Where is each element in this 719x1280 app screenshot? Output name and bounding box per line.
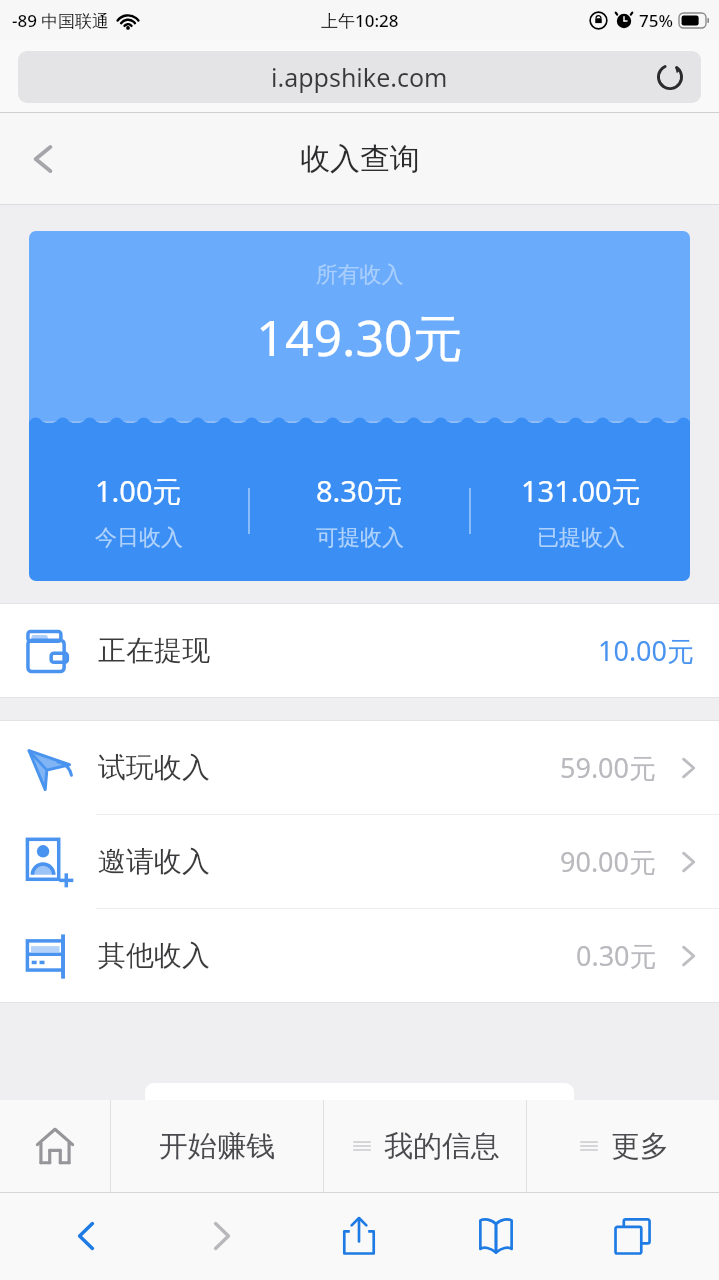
staticText: 其他收入: [98, 938, 210, 973]
button[interactable]: Back: [18, 1192, 154, 1280]
staticText: 收入查询: [300, 140, 420, 178]
button[interactable]: Home: [0, 1100, 110, 1192]
button[interactable]: Share: [290, 1192, 427, 1280]
staticText: 我的信息: [384, 1128, 500, 1165]
button[interactable]: Tabs: [564, 1192, 701, 1280]
staticText: 所有收入: [29, 261, 690, 289]
button[interactable]: 正在提现: [0, 604, 719, 697]
staticText: 149.30元: [29, 303, 690, 371]
button[interactable]: 所有收入: [29, 231, 690, 581]
staticText: 8.30元: [316, 471, 403, 511]
staticText: 90.00元: [560, 843, 657, 880]
staticText: 10.00元: [598, 632, 695, 669]
button[interactable]: 更多: [527, 1100, 719, 1192]
button[interactable]: 邀请收入: [0, 815, 719, 908]
staticText: 75%: [639, 9, 673, 32]
button[interactable]: Back: [20, 136, 66, 182]
staticText: 可提收入: [316, 524, 404, 552]
staticText: 0.30元: [576, 937, 657, 974]
staticText: 已提收入: [537, 524, 625, 552]
button[interactable]: 试玩收入: [0, 721, 719, 814]
staticText: 正在提现: [98, 633, 210, 668]
staticText: i.appshike.com: [271, 60, 448, 94]
button[interactable]: Forward: [154, 1192, 290, 1280]
staticText: -89 中国联通: [12, 9, 110, 32]
button[interactable]: Reload: [653, 60, 687, 94]
button[interactable]: 其他收入: [0, 909, 719, 1002]
staticText: 试玩收入: [98, 750, 210, 785]
button[interactable]: i.appshike.com: [18, 51, 701, 103]
button[interactable]: Bookmarks: [427, 1192, 564, 1280]
staticText: 1.00元: [95, 471, 182, 511]
staticText: 更多: [611, 1128, 669, 1165]
button[interactable]: 我的信息: [324, 1100, 526, 1192]
staticText: 今日收入: [95, 524, 183, 552]
staticText: 上午10:28: [321, 9, 399, 32]
staticText: 开始赚钱: [159, 1128, 275, 1165]
staticText: 59.00元: [560, 749, 657, 786]
button[interactable]: 开始赚钱: [111, 1100, 323, 1192]
staticText: 邀请收入: [98, 844, 210, 879]
staticText: 131.00元: [521, 471, 641, 511]
